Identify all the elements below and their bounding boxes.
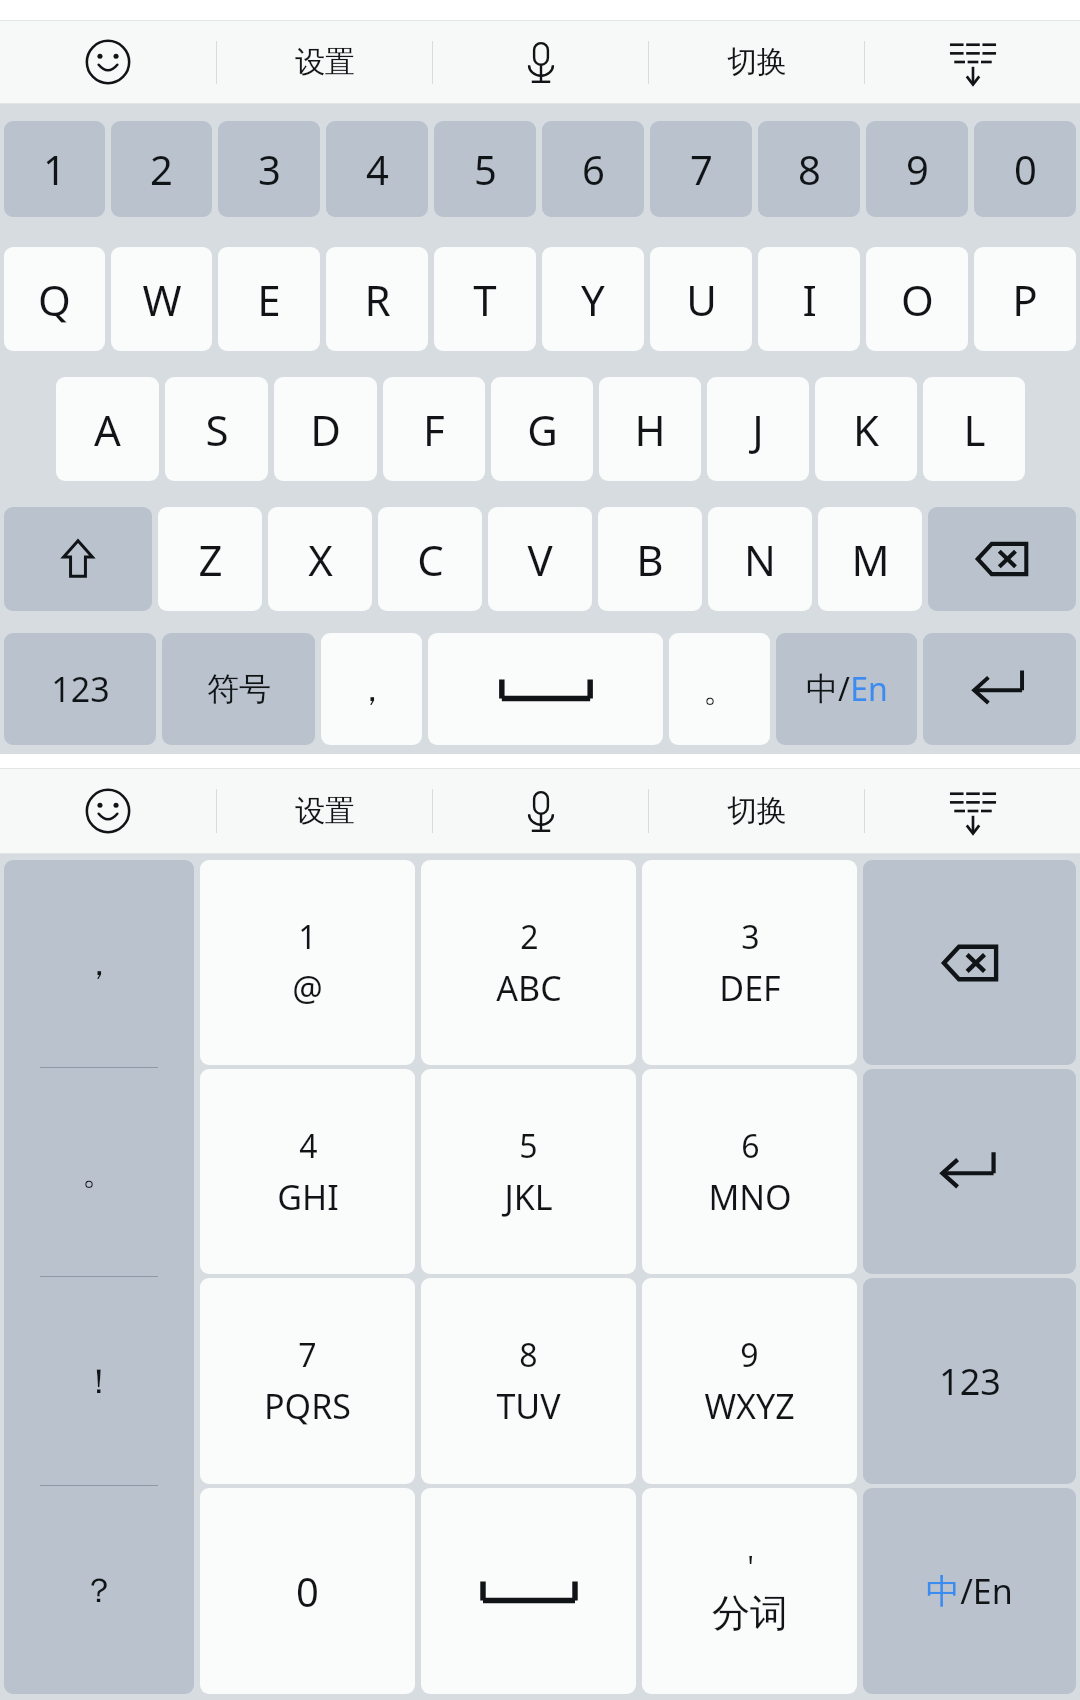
button[interactable]: 切换 bbox=[649, 769, 864, 853]
staticText: ， bbox=[82, 942, 116, 985]
button[interactable]: Space bbox=[428, 633, 663, 745]
button[interactable]: V bbox=[488, 507, 592, 611]
button[interactable]: I bbox=[758, 247, 860, 351]
staticText: 。 bbox=[82, 1151, 116, 1194]
staticText: L bbox=[963, 401, 986, 458]
staticText: TUV bbox=[496, 1383, 561, 1429]
staticText: N bbox=[744, 531, 776, 588]
staticText: T bbox=[473, 271, 497, 328]
button[interactable]: Backspace bbox=[928, 507, 1076, 611]
button[interactable]: X bbox=[268, 507, 372, 611]
button[interactable]: 设置 bbox=[217, 769, 432, 853]
staticText: V bbox=[527, 531, 553, 588]
button[interactable]: C bbox=[378, 507, 482, 611]
staticText: R bbox=[364, 271, 391, 328]
staticText: K bbox=[853, 401, 879, 458]
staticText: 123 bbox=[51, 666, 110, 712]
button[interactable]: Y bbox=[542, 247, 644, 351]
button[interactable]: M bbox=[818, 507, 922, 611]
staticText: 2 bbox=[520, 915, 539, 959]
button[interactable]: U bbox=[650, 247, 752, 351]
button[interactable]: Enter bbox=[863, 1069, 1076, 1274]
button[interactable]: S bbox=[165, 377, 268, 481]
button[interactable]: 7 bbox=[650, 121, 752, 217]
staticText: 1 bbox=[298, 915, 317, 959]
button[interactable]: 123 bbox=[4, 633, 156, 745]
button[interactable]: Hide keyboard bbox=[865, 769, 1080, 853]
button[interactable]: 切换 bbox=[649, 21, 864, 103]
staticText: 5 bbox=[474, 142, 497, 196]
button[interactable]: 5 bbox=[434, 121, 536, 217]
button[interactable]: P bbox=[974, 247, 1076, 351]
button[interactable]: 8 bbox=[758, 121, 860, 217]
staticText: 123 bbox=[939, 1357, 1001, 1406]
button[interactable]: 。 bbox=[669, 633, 770, 745]
button[interactable]: 6 bbox=[642, 1069, 857, 1274]
button[interactable]: 8 bbox=[421, 1278, 636, 1484]
button[interactable]: Shift bbox=[4, 507, 152, 611]
staticText: W bbox=[142, 271, 182, 328]
button[interactable]: Hide keyboard bbox=[865, 21, 1080, 103]
button[interactable]: J bbox=[707, 377, 809, 481]
staticText: WXYZ bbox=[704, 1383, 795, 1429]
button[interactable]: 中 bbox=[776, 633, 917, 745]
staticText: P bbox=[1012, 271, 1038, 328]
button[interactable]: Voice input bbox=[433, 21, 648, 103]
button[interactable]: A bbox=[56, 377, 159, 481]
button[interactable]: 9 bbox=[866, 121, 968, 217]
button[interactable]: 符号 bbox=[162, 633, 315, 745]
button[interactable]: E bbox=[218, 247, 320, 351]
button[interactable]: ， bbox=[321, 633, 422, 745]
button[interactable]: 4 bbox=[326, 121, 428, 217]
button[interactable]: 5 bbox=[421, 1069, 636, 1274]
button[interactable]: D bbox=[274, 377, 377, 481]
button[interactable]: Q bbox=[4, 247, 105, 351]
button[interactable]: 4 bbox=[200, 1069, 415, 1274]
staticText: U bbox=[686, 271, 717, 328]
button[interactable]: F bbox=[383, 377, 485, 481]
staticText: GHI bbox=[277, 1174, 339, 1220]
staticText: 3 bbox=[258, 142, 281, 196]
button[interactable]: 3 bbox=[218, 121, 320, 217]
button[interactable]: ' bbox=[642, 1488, 857, 1694]
button[interactable]: 9 bbox=[642, 1278, 857, 1484]
button[interactable]: 中 bbox=[863, 1488, 1076, 1694]
button[interactable]: N bbox=[708, 507, 812, 611]
button[interactable]: Emoji bbox=[0, 769, 216, 853]
button[interactable]: 123 bbox=[863, 1278, 1076, 1484]
button[interactable]: W bbox=[111, 247, 212, 351]
button[interactable]: 1 bbox=[4, 121, 105, 217]
button[interactable]: O bbox=[866, 247, 968, 351]
button[interactable]: 0 bbox=[200, 1488, 415, 1694]
button[interactable]: Space bbox=[421, 1488, 636, 1694]
button[interactable]: 7 bbox=[200, 1278, 415, 1484]
staticText: Z bbox=[198, 531, 223, 588]
button[interactable]: 1 bbox=[200, 860, 415, 1065]
button[interactable]: 0 bbox=[974, 121, 1076, 217]
button[interactable]: 3 bbox=[642, 860, 857, 1065]
staticText: 。 bbox=[703, 668, 737, 711]
button[interactable]: L bbox=[923, 377, 1025, 481]
button[interactable]: H bbox=[599, 377, 701, 481]
button[interactable]: K bbox=[815, 377, 917, 481]
button[interactable]: Backspace bbox=[863, 860, 1076, 1065]
button[interactable]: G bbox=[491, 377, 593, 481]
staticText: 中 bbox=[806, 669, 838, 709]
button[interactable]: 6 bbox=[542, 121, 644, 217]
button[interactable]: Z bbox=[158, 507, 262, 611]
button[interactable]: T bbox=[434, 247, 536, 351]
button[interactable]: 2 bbox=[421, 860, 636, 1065]
staticText: ' bbox=[747, 1546, 754, 1587]
button[interactable]: ， bbox=[4, 860, 194, 1694]
staticText: H bbox=[634, 401, 666, 458]
button[interactable]: Voice input bbox=[433, 769, 648, 853]
staticText: 6 bbox=[582, 142, 605, 196]
button[interactable]: Enter bbox=[923, 633, 1076, 745]
staticText: X bbox=[308, 531, 333, 588]
button[interactable]: 2 bbox=[111, 121, 212, 217]
button[interactable]: B bbox=[598, 507, 702, 611]
button[interactable]: R bbox=[326, 247, 428, 351]
button[interactable]: Emoji bbox=[0, 21, 216, 103]
staticText: 2 bbox=[150, 142, 173, 196]
button[interactable]: 设置 bbox=[217, 21, 432, 103]
